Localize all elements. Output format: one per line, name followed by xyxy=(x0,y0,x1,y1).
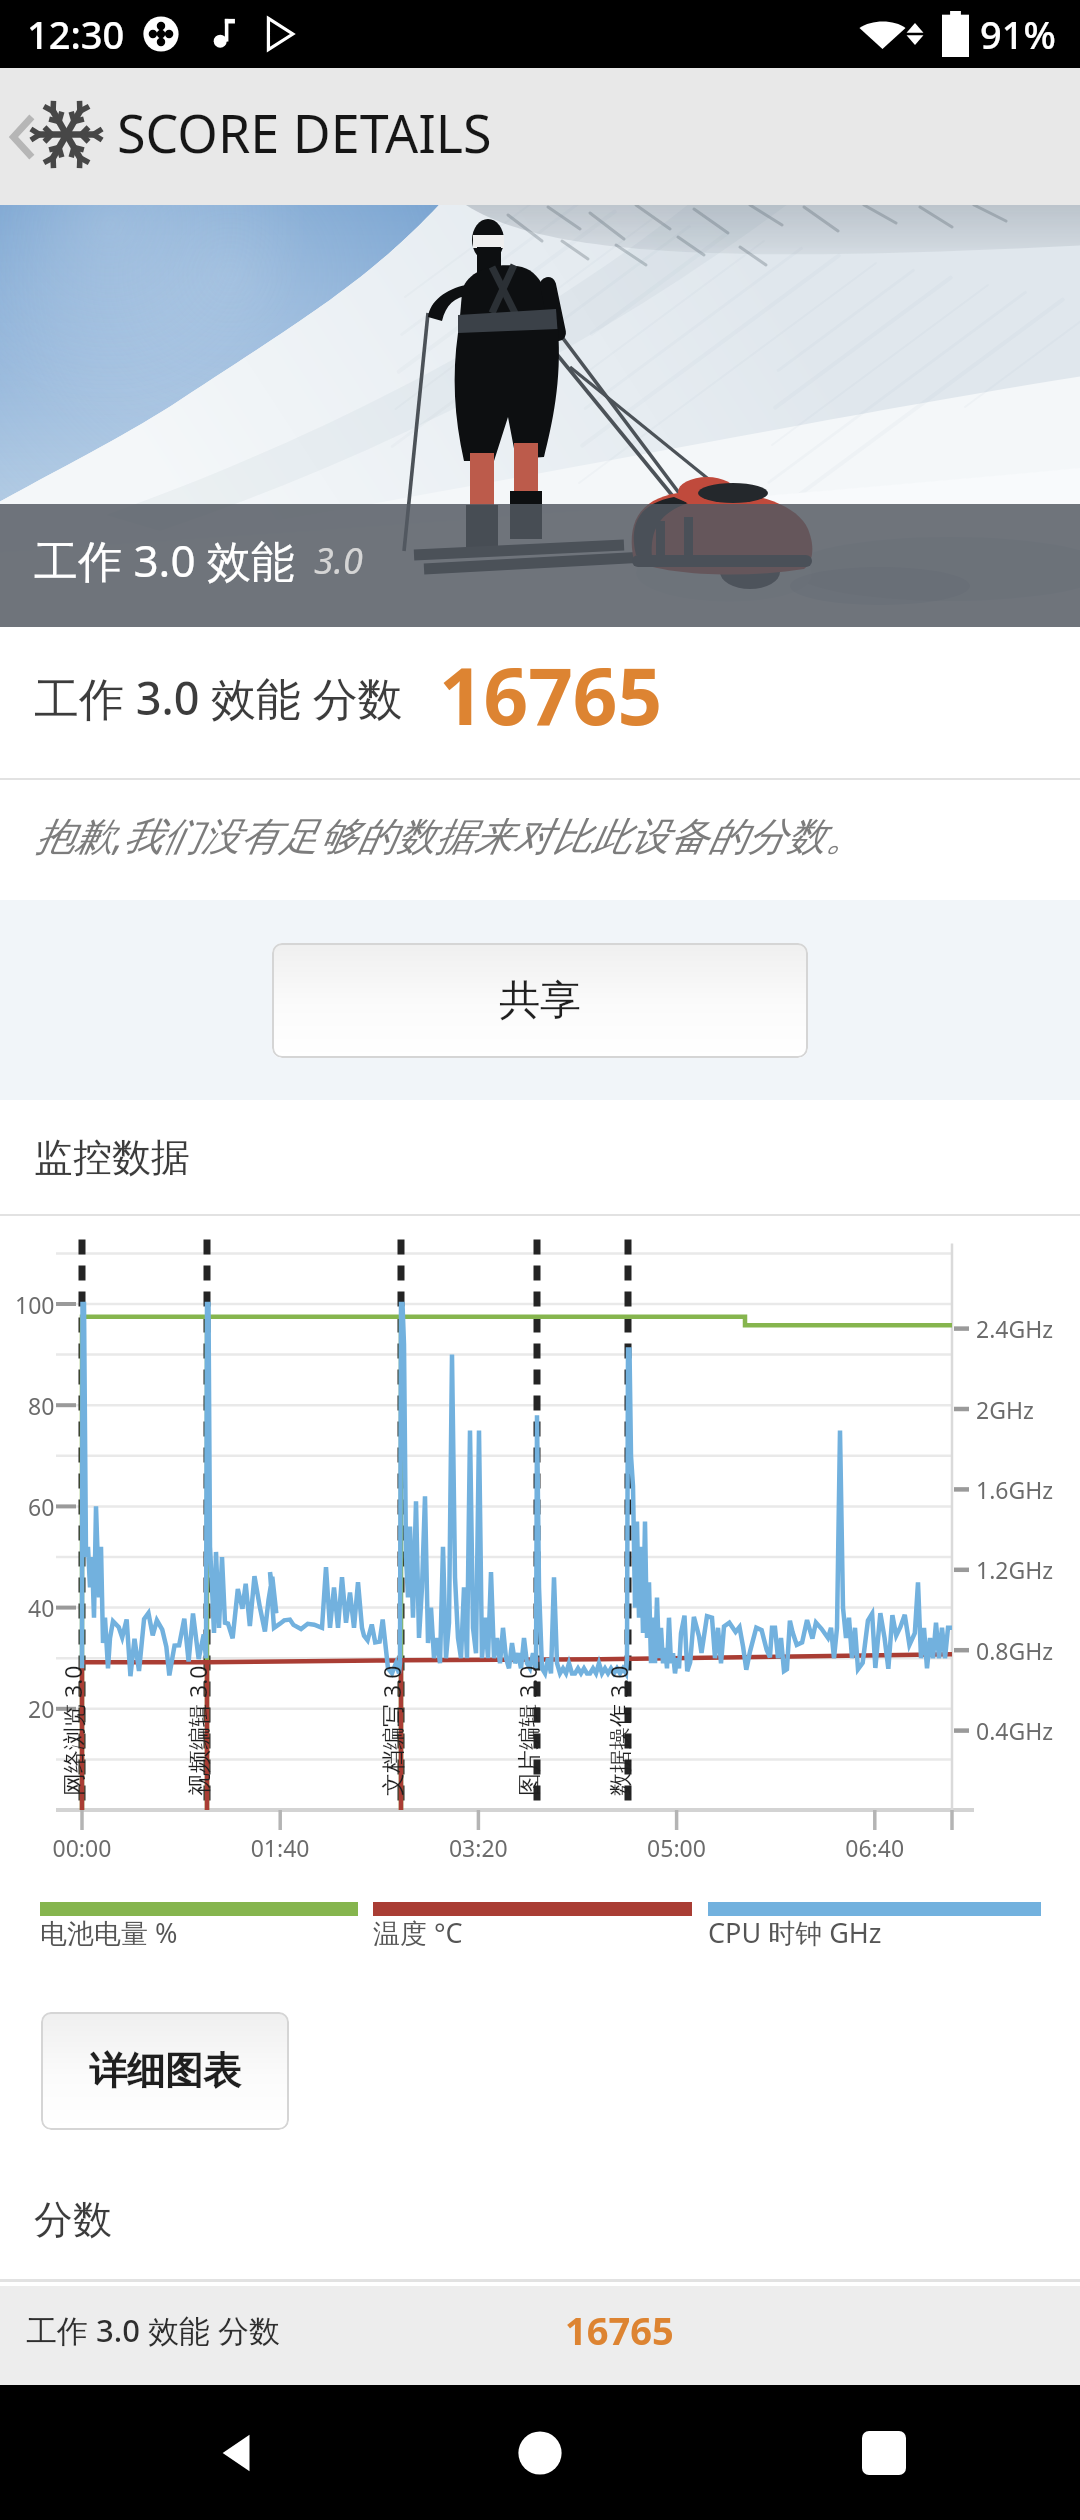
button[interactable]: 详细图表 xyxy=(41,2012,289,2130)
other: Back xyxy=(10,116,33,158)
staticText: 工作 3.0 效能 xyxy=(34,530,296,590)
staticText: 工作 3.0 效能 分数 xyxy=(26,2309,281,2351)
staticText: 工作 3.0 效能 分数 xyxy=(34,667,403,728)
staticText: SCORE DETAILS xyxy=(117,97,492,168)
staticText: 抱歉,我们没有足够的数据来对比此设备的分数。 xyxy=(35,808,864,861)
staticText: 共享 xyxy=(499,975,581,1027)
staticText: 12:30 xyxy=(27,8,125,60)
staticText: 详细图表 xyxy=(89,2047,241,2095)
button[interactable]: Back xyxy=(0,68,1080,205)
staticText: CPU 时钟 GHz xyxy=(708,1914,882,1951)
button[interactable]: 工作 3.0 效能 分数 xyxy=(0,2286,1080,2385)
staticText: 3.0 xyxy=(314,536,363,585)
staticText: 分数 xyxy=(34,2195,112,2244)
staticText: 91% xyxy=(980,8,1056,60)
staticText: 电池电量 % xyxy=(40,1914,178,1951)
button[interactable]: 共享 xyxy=(272,943,808,1058)
button[interactable]: Home xyxy=(492,2405,588,2501)
staticText: 监控数据 xyxy=(34,1133,190,1182)
button[interactable]: Recents xyxy=(836,2405,932,2501)
button[interactable]: Back xyxy=(190,2405,286,2501)
staticText: 温度 °C xyxy=(373,1914,463,1951)
staticText: 16765 xyxy=(565,2304,674,2356)
staticText: 16765 xyxy=(439,642,663,748)
